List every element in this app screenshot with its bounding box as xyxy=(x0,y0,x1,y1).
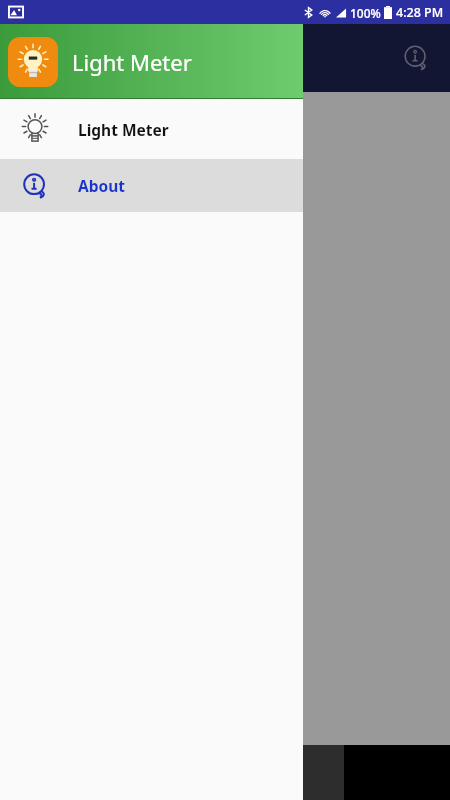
staticText: Other apps xyxy=(18,172,119,198)
button[interactable]: About xyxy=(396,38,436,78)
staticText: Light Meter by Nirmal Jain xyxy=(18,110,214,132)
button[interactable]: About xyxy=(0,159,303,212)
staticText: 100% xyxy=(350,5,381,21)
button[interactable]: Light Meter xyxy=(0,99,303,159)
staticText: Light Meter xyxy=(78,119,169,140)
staticText: Light Meter xyxy=(72,47,192,77)
staticText: 4:28 PM xyxy=(396,4,444,21)
staticText: About xyxy=(78,175,126,196)
